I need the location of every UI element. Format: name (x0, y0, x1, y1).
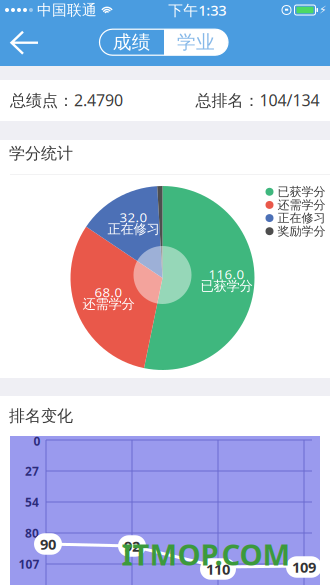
staticText: 学分统计 (9, 144, 73, 163)
staticText: 总排名：104/134 (195, 89, 319, 111)
staticText: 成绩 (113, 31, 151, 54)
staticText: 排名变化 (9, 406, 73, 426)
staticText: 27 (25, 463, 39, 479)
staticText: 0 (33, 433, 40, 449)
staticText: 正在修习 (107, 221, 159, 237)
staticText: 54 (25, 494, 39, 510)
staticText: 116.0 (208, 265, 244, 283)
staticText: 奖励学分 (277, 224, 325, 238)
staticText: 总绩点：2.4790 (10, 89, 123, 111)
staticText: 32.0 (119, 208, 147, 226)
staticText: 中国联通 (37, 1, 97, 19)
staticText: 80 (25, 525, 39, 541)
staticText: 正在修习 (277, 211, 325, 225)
staticText: 109 (292, 557, 316, 577)
staticText: 68.0 (94, 283, 122, 301)
staticText: 92 (124, 536, 140, 556)
staticText: 还需学分 (277, 198, 325, 212)
staticText: 已获学分 (200, 278, 252, 294)
staticText: ITMOP.COM (121, 534, 290, 573)
staticText: ⚡︎ (319, 4, 326, 16)
staticText: 107 (18, 556, 39, 572)
button[interactable]: 成绩 (99, 29, 164, 55)
button[interactable]: Back (0, 21, 49, 65)
staticText: 90 (40, 534, 56, 554)
staticText: 已获学分 (277, 184, 325, 199)
button[interactable]: 学业 (164, 29, 228, 55)
staticText: 学业 (177, 31, 215, 54)
staticText: 下午1:33 (168, 0, 226, 20)
staticText: 110 (206, 559, 230, 579)
staticText: 还需学分 (82, 296, 134, 312)
